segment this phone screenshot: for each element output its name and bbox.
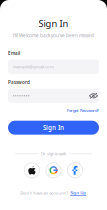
- button[interactable]: Forgot Password?: [67, 108, 99, 113]
- button[interactable]: Sign In: [8, 121, 99, 135]
- staticText: Hi! Welcome back you've been missed: [13, 32, 94, 38]
- staticText: Sign In: [43, 123, 64, 132]
- button[interactable]: Sign in with Apple: [24, 162, 40, 178]
- button[interactable]: Don't have an account?: [20, 190, 87, 196]
- staticText: Don't have an account?: [20, 190, 68, 196]
- staticText: Or sign in with: [41, 151, 66, 156]
- staticText: Sign Up: [70, 190, 86, 195]
- button[interactable]: Sign in with Facebook: [67, 162, 83, 178]
- staticText: Email: [8, 50, 20, 56]
- staticText: Sign In: [38, 17, 68, 30]
- staticText: example@gmail.com: [13, 64, 54, 69]
- button[interactable]: Sign in with Google: [46, 162, 61, 178]
- staticText: Password: [8, 79, 30, 85]
- staticText: Forgot Password?: [67, 108, 99, 113]
